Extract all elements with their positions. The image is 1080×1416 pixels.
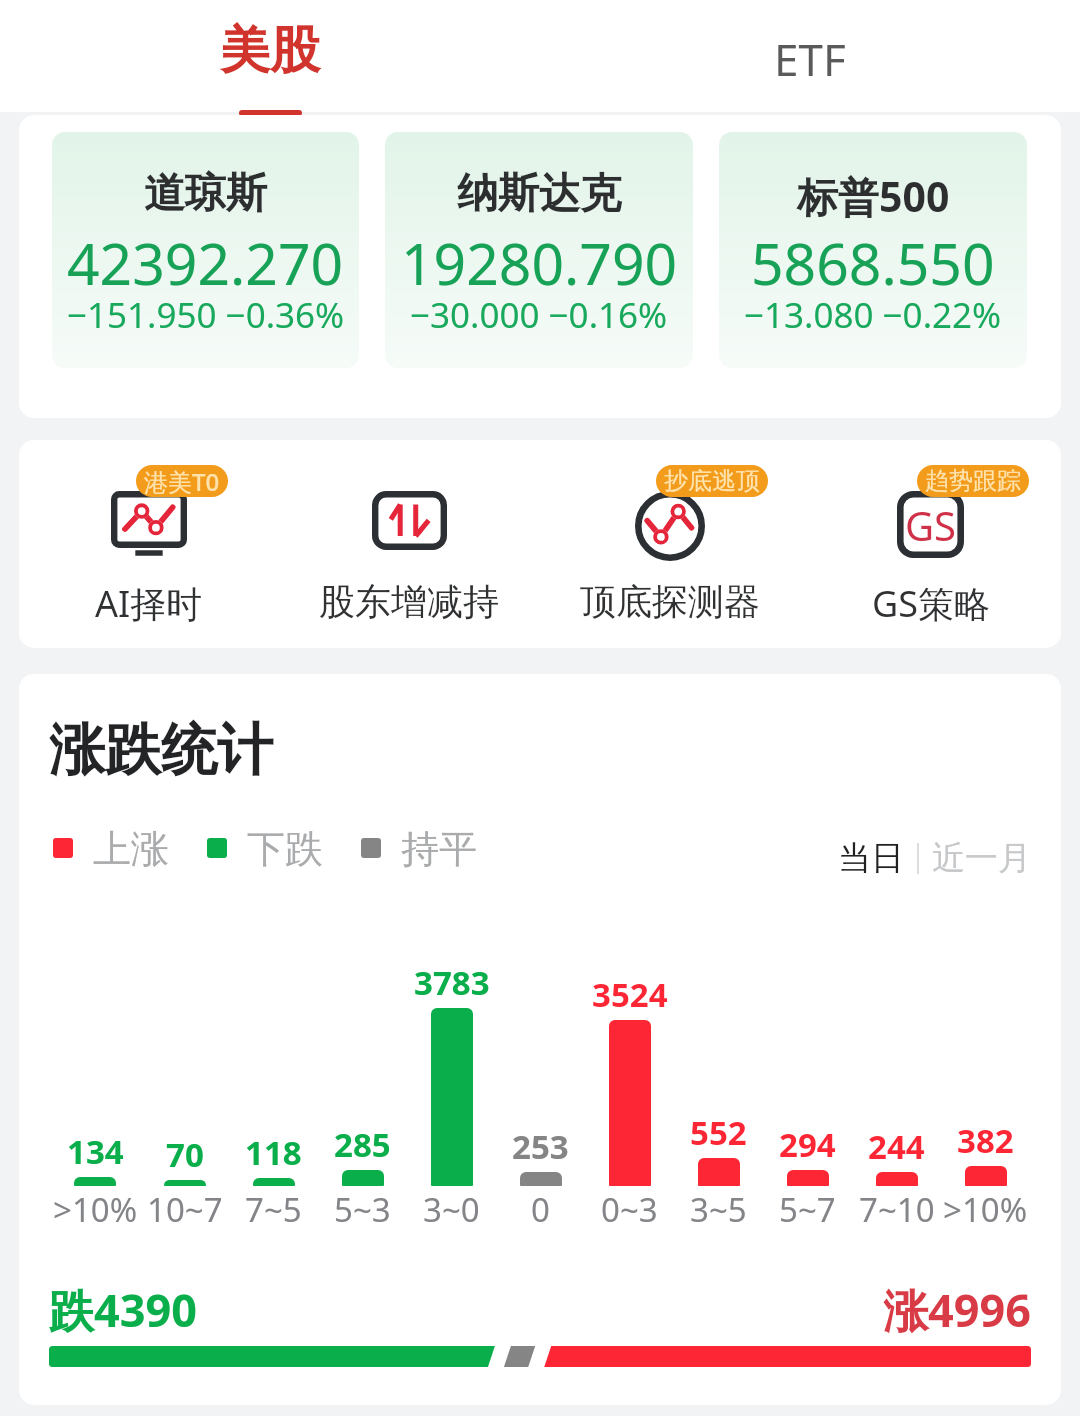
staticText: 持平 — [401, 825, 477, 870]
staticText: 道琼斯 — [144, 168, 267, 220]
staticText: >10% — [943, 1187, 1028, 1232]
staticText: 涨跌统计 — [49, 715, 273, 786]
staticText: −30.000 −0.16% — [410, 291, 668, 339]
staticText: 顶底探测器 — [580, 579, 760, 624]
staticText: 552 — [690, 1110, 747, 1155]
staticText: 跌4390 — [49, 1279, 197, 1340]
staticText: >10% — [53, 1187, 138, 1232]
staticText: 上涨 — [93, 825, 169, 870]
staticText: −13.080 −0.22% — [744, 291, 1002, 339]
button[interactable]: 纳斯达克 — [385, 132, 693, 368]
staticText: 5~3 — [334, 1187, 391, 1232]
staticText: 134 — [67, 1129, 124, 1174]
staticText: 趋势跟踪 — [925, 466, 1021, 496]
staticText: 285 — [334, 1122, 391, 1167]
staticText: 19280.790 — [401, 224, 678, 302]
staticText: 标普500 — [797, 168, 950, 224]
button[interactable]: ETF — [540, 0, 1080, 115]
other: 顶底探测器 — [635, 491, 705, 561]
staticText: 抄底逃顶 — [664, 466, 760, 496]
button[interactable]: 上涨 — [53, 825, 169, 870]
staticText: 3783 — [414, 960, 490, 1005]
staticText: ETF — [774, 29, 846, 89]
staticText: 当日 — [838, 837, 904, 879]
staticText: 美股 — [220, 19, 320, 82]
button[interactable]: 美股 — [0, 0, 540, 115]
staticText: 涨4996 — [883, 1279, 1031, 1340]
button[interactable]: 持平 — [361, 825, 477, 870]
button[interactable]: 标普500 — [719, 132, 1027, 368]
staticText: 42392.270 — [67, 224, 344, 302]
staticText: 近一月 — [932, 837, 1031, 879]
button[interactable]: 道琼斯 — [52, 132, 359, 368]
staticText: 118 — [245, 1130, 302, 1175]
staticText: 294 — [779, 1122, 836, 1167]
staticText: 3524 — [592, 972, 668, 1017]
staticText: 382 — [957, 1118, 1014, 1163]
button[interactable]: 当日 — [838, 837, 904, 879]
staticText: 5868.550 — [751, 224, 995, 302]
button[interactable]: 股东增减持 — [279, 440, 539, 648]
staticText: 253 — [512, 1124, 569, 1169]
staticText: 3~5 — [690, 1187, 747, 1232]
staticText: 0 — [531, 1187, 550, 1232]
button[interactable]: 顶底探测器 — [539, 440, 800, 648]
staticText: 244 — [868, 1124, 925, 1169]
staticText: 纳斯达克 — [457, 168, 621, 220]
staticText: 港美T0 — [144, 465, 220, 497]
other: GS策略 — [897, 491, 964, 558]
staticText: 70 — [166, 1132, 204, 1177]
staticText: GS — [905, 498, 957, 552]
button[interactable]: AI择时 — [19, 440, 279, 648]
button[interactable]: 近一月 — [932, 837, 1031, 879]
staticText: 7~10 — [859, 1187, 935, 1232]
staticText: 10~7 — [147, 1187, 223, 1232]
staticText: 7~5 — [245, 1187, 302, 1232]
staticText: 5~7 — [779, 1187, 836, 1232]
button[interactable]: GS策略 — [800, 440, 1061, 648]
staticText: 下跌 — [247, 825, 323, 870]
staticText: GS策略 — [872, 579, 990, 628]
other: AI择时 — [111, 491, 187, 557]
staticText: AI择时 — [95, 579, 203, 628]
staticText: −151.950 −0.36% — [67, 291, 345, 339]
staticText: 0~3 — [601, 1187, 658, 1232]
other: 股东增减持 — [372, 491, 447, 550]
staticText: 股东增减持 — [319, 579, 499, 624]
button[interactable]: 下跌 — [207, 825, 323, 870]
staticText: 3~0 — [423, 1187, 480, 1232]
